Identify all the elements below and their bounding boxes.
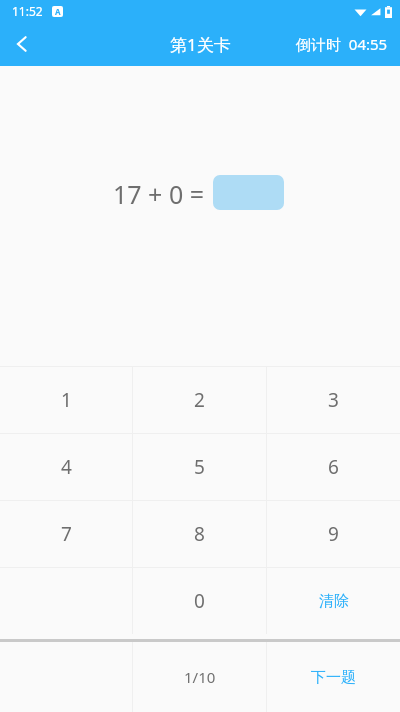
- staticText: 6: [328, 454, 339, 480]
- button[interactable]: 8: [133, 501, 266, 567]
- staticText: 第1关卡: [170, 33, 231, 56]
- button[interactable]: 9: [267, 501, 400, 567]
- staticText: 9: [328, 521, 339, 547]
- button[interactable]: 7: [0, 501, 132, 567]
- staticText: 下一题: [311, 668, 356, 687]
- staticText: 2: [194, 387, 205, 413]
- staticText: 8: [194, 521, 205, 547]
- staticText: 17 + 0 =: [113, 177, 205, 211]
- button[interactable]: 3: [267, 367, 400, 433]
- button[interactable]: 2: [133, 367, 266, 433]
- staticText: 1/10: [184, 667, 216, 687]
- button[interactable]: 倒计时 04:55: [296, 34, 388, 54]
- staticText: 11:52: [12, 3, 43, 19]
- button[interactable]: 清除: [267, 568, 400, 634]
- button[interactable]: 4: [0, 434, 132, 500]
- button[interactable]: [213, 175, 284, 210]
- button[interactable]: 6: [267, 434, 400, 500]
- staticText: 0: [194, 588, 205, 614]
- button[interactable]: 5: [133, 434, 266, 500]
- staticText: 3: [328, 387, 339, 413]
- staticText: 7: [61, 521, 72, 547]
- button[interactable]: 1/10: [133, 642, 266, 712]
- button[interactable]: 0: [133, 568, 266, 634]
- staticText: 清除: [319, 592, 349, 611]
- button[interactable]: 1: [0, 367, 132, 433]
- staticText: 1: [61, 387, 72, 413]
- button[interactable]: Back: [0, 22, 44, 66]
- staticText: 4: [61, 454, 72, 480]
- staticText: A: [55, 6, 61, 17]
- button[interactable]: 下一题: [267, 642, 400, 712]
- staticText: 5: [194, 454, 205, 480]
